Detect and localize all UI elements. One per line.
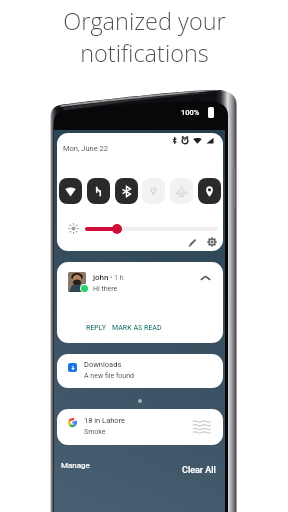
staticText: MARK AS READ — [112, 324, 162, 332]
button[interactable]: Wi-Fi — [59, 178, 82, 204]
staticText: • 1 h — [110, 274, 124, 282]
button[interactable]: REPLY — [86, 324, 107, 332]
button[interactable]: Airplane mode — [170, 178, 193, 204]
staticText: 100% — [181, 108, 200, 117]
staticText: john — [93, 273, 109, 282]
staticText: notifications — [80, 37, 209, 69]
staticText: Mon, June 22 — [63, 144, 108, 153]
staticText: Hi there — [93, 285, 118, 293]
button[interactable]: Collapse — [200, 273, 211, 284]
button[interactable]: Downloads — [57, 354, 223, 388]
staticText: Smoke — [84, 428, 106, 436]
button[interactable]: 18 in Lahore — [57, 409, 223, 445]
staticText: 18 in Lahore — [84, 416, 126, 425]
button[interactable]: Clear All — [182, 465, 216, 476]
button[interactable]: Location — [198, 178, 221, 204]
staticText: REPLY — [86, 324, 107, 332]
button[interactable]: Edit — [188, 238, 197, 247]
staticText: Downloads — [84, 360, 122, 369]
staticText: A new file found — [84, 372, 135, 380]
button[interactable]: Manage — [61, 461, 90, 470]
button[interactable]: Settings — [207, 237, 217, 247]
staticText: Clear All — [182, 465, 216, 476]
staticText: Organized your — [63, 5, 226, 37]
button[interactable]: MARK AS READ — [112, 324, 162, 332]
button[interactable]: Sound — [87, 178, 110, 204]
button[interactable]: Flashlight — [142, 178, 165, 204]
staticText: Manage — [61, 461, 90, 470]
button[interactable]: Bluetooth — [115, 178, 138, 204]
